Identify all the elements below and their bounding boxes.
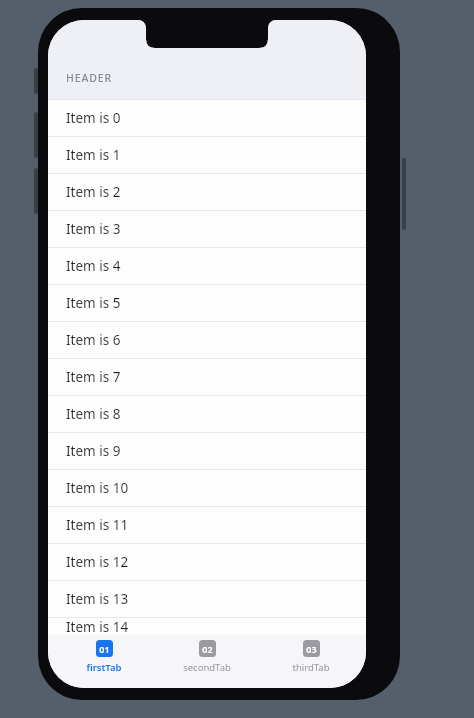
button[interactable]: Item is 1 (48, 137, 366, 173)
button[interactable]: Item is 6 (48, 322, 366, 358)
staticText: Item is 10 (66, 479, 129, 497)
staticText: Item is 1 (66, 146, 121, 164)
button[interactable]: Item is 8 (48, 396, 366, 432)
button[interactable]: Item is 7 (48, 359, 366, 395)
staticText: Item is 7 (66, 368, 121, 386)
staticText: Item is 2 (66, 183, 121, 201)
button[interactable]: firstTab (56, 640, 152, 674)
staticText: Item is 13 (66, 590, 129, 608)
staticText: Item is 12 (66, 553, 129, 571)
staticText: Item is 9 (66, 442, 121, 460)
staticText: Item is 3 (66, 220, 121, 238)
staticText: Item is 8 (66, 405, 121, 423)
button[interactable]: Item is 10 (48, 470, 366, 506)
button[interactable]: Item is 2 (48, 174, 366, 210)
staticText: 01 (99, 643, 110, 655)
button[interactable]: Item is 3 (48, 211, 366, 247)
staticText: Item is 5 (66, 294, 121, 312)
staticText: firstTab (86, 661, 122, 674)
staticText: 02 (202, 643, 213, 655)
button[interactable]: Item is 13 (48, 581, 366, 617)
staticText: 03 (306, 643, 317, 655)
staticText: Item is 6 (66, 331, 121, 349)
button[interactable]: Item is 0 (48, 100, 366, 136)
button[interactable]: Item is 12 (48, 544, 366, 580)
button[interactable]: Item is 9 (48, 433, 366, 469)
button[interactable]: Item is 5 (48, 285, 366, 321)
button[interactable]: thirdTab (263, 640, 359, 674)
staticText: HEADER (66, 71, 113, 85)
staticText: Item is 11 (66, 516, 129, 534)
staticText: secondTab (183, 661, 231, 674)
button[interactable]: Item is 11 (48, 507, 366, 543)
staticText: Item is 0 (66, 109, 121, 127)
staticText: Item is 14 (66, 618, 129, 635)
staticText: Item is 4 (66, 257, 121, 275)
staticText: thirdTab (292, 661, 330, 674)
button[interactable]: Item is 4 (48, 248, 366, 284)
button[interactable]: secondTab (159, 640, 255, 674)
button[interactable]: Item is 14 (48, 618, 366, 635)
